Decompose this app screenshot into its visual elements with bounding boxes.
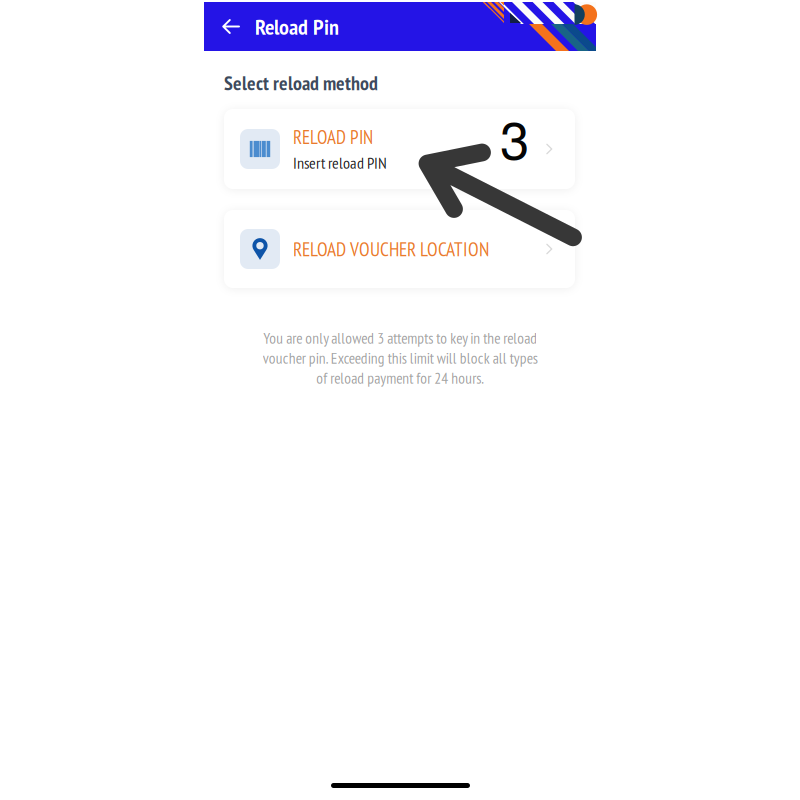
button[interactable]: RELOAD PIN	[224, 109, 575, 189]
staticText: Reload Pin	[255, 12, 339, 41]
button[interactable]: RELOAD VOUCHER LOCATION	[224, 210, 575, 288]
staticText: RELOAD PIN	[293, 125, 373, 149]
staticText: Insert reload PIN	[293, 152, 387, 173]
staticText: Select reload method	[224, 70, 378, 96]
staticText: RELOAD VOUCHER LOCATION	[293, 236, 489, 261]
staticText: You are only allowed 3 attempts to key i…	[262, 328, 537, 388]
button[interactable]: Back	[204, 2, 255, 51]
staticText: 3	[500, 99, 529, 174]
